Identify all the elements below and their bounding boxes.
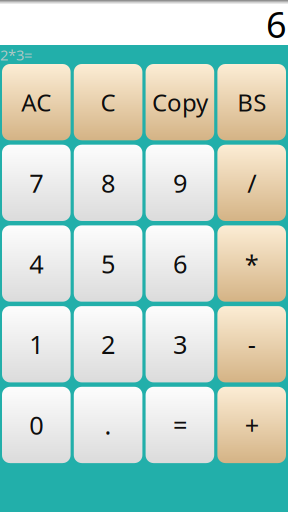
staticText: = <box>173 408 187 442</box>
staticText: 2*3= <box>0 45 32 64</box>
staticText: 1 <box>29 327 43 361</box>
button[interactable]: - <box>217 306 286 382</box>
staticText: 8 <box>101 166 115 200</box>
button[interactable]: 6 <box>146 225 214 302</box>
staticText: 6 <box>266 0 287 48</box>
button[interactable]: AC <box>2 64 71 140</box>
button[interactable]: * <box>217 225 286 302</box>
button[interactable]: 3 <box>146 306 214 382</box>
button[interactable]: 1 <box>2 306 71 382</box>
staticText: 4 <box>29 247 43 280</box>
button[interactable]: / <box>217 145 286 221</box>
staticText: C <box>101 86 116 118</box>
staticText: . <box>105 408 112 442</box>
button[interactable]: . <box>74 387 142 463</box>
button[interactable]: 8 <box>74 145 142 221</box>
staticText: Copy <box>152 86 208 118</box>
button[interactable]: 9 <box>146 145 214 221</box>
button[interactable]: BS <box>217 64 286 140</box>
staticText: AC <box>21 86 51 118</box>
button[interactable]: = <box>146 387 214 463</box>
button[interactable]: 2 <box>74 306 142 382</box>
staticText: 5 <box>101 247 115 280</box>
staticText: / <box>247 166 256 200</box>
staticText: + <box>245 408 259 442</box>
staticText: * <box>245 247 259 280</box>
button[interactable]: 5 <box>74 225 142 302</box>
staticText: 3 <box>173 327 187 361</box>
button[interactable]: Copy <box>146 64 214 140</box>
button[interactable]: + <box>217 387 286 463</box>
staticText: 6 <box>173 247 187 280</box>
staticText: 2 <box>101 327 115 361</box>
staticText: BS <box>237 86 266 118</box>
button[interactable]: 7 <box>2 145 71 221</box>
staticText: - <box>248 327 256 361</box>
button[interactable]: C <box>74 64 142 140</box>
button[interactable]: 4 <box>2 225 71 302</box>
staticText: 7 <box>29 166 43 200</box>
button[interactable]: 0 <box>2 387 71 463</box>
staticText: 0 <box>29 408 43 442</box>
staticText: 9 <box>173 166 187 200</box>
